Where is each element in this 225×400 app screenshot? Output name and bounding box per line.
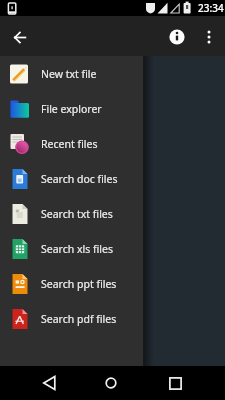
button[interactable]: Search pdf files <box>0 301 143 336</box>
staticText: New txt file <box>41 67 97 81</box>
button[interactable] <box>167 27 187 47</box>
button[interactable]: File explorer <box>0 91 143 126</box>
button[interactable]: Search xls files <box>0 231 143 266</box>
button[interactable]: Search txt files <box>0 196 143 231</box>
button[interactable] <box>35 368 65 398</box>
button[interactable]: Search ppt files <box>0 266 143 301</box>
button[interactable]: New txt file <box>0 56 143 91</box>
staticText: Search xls files <box>41 242 113 256</box>
button[interactable]: Search doc files <box>0 161 143 196</box>
button[interactable] <box>10 27 30 47</box>
staticText: Recent files <box>41 137 98 151</box>
button[interactable] <box>96 368 126 398</box>
staticText: 23:34 <box>198 1 224 15</box>
button[interactable] <box>201 29 217 45</box>
staticText: Search txt files <box>41 207 113 221</box>
staticText: Search ppt files <box>41 277 117 291</box>
button[interactable]: Recent files <box>0 126 143 161</box>
staticText: File explorer <box>41 102 102 116</box>
staticText: Search doc files <box>41 172 118 186</box>
button[interactable] <box>160 368 190 398</box>
staticText: Search pdf files <box>41 312 117 326</box>
